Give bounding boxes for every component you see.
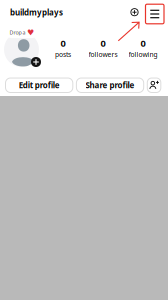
staticText: 0 bbox=[60, 37, 65, 49]
staticText: buildmyplays bbox=[10, 7, 63, 18]
staticText: Drop a bbox=[9, 29, 25, 36]
staticText: posts bbox=[55, 50, 71, 59]
staticText: 0 bbox=[140, 37, 145, 49]
staticText: 0 bbox=[100, 37, 105, 49]
staticText: following bbox=[128, 50, 157, 59]
button[interactable]: New post bbox=[0, 0, 138, 16]
staticText: Share profile bbox=[86, 80, 135, 90]
staticText: Edit profile bbox=[19, 80, 60, 90]
staticText: followers bbox=[88, 50, 117, 59]
button[interactable]: Share profile bbox=[76, 78, 144, 92]
button[interactable]: Edit profile bbox=[5, 78, 73, 92]
button[interactable]: 0 bbox=[43, 37, 83, 59]
button[interactable]: Discover people bbox=[147, 78, 161, 92]
button[interactable]: 0 bbox=[83, 37, 123, 59]
staticText: ♥ bbox=[27, 28, 34, 37]
button[interactable]: 0 bbox=[123, 37, 163, 59]
button[interactable]: Menu bbox=[0, 0, 164, 24]
